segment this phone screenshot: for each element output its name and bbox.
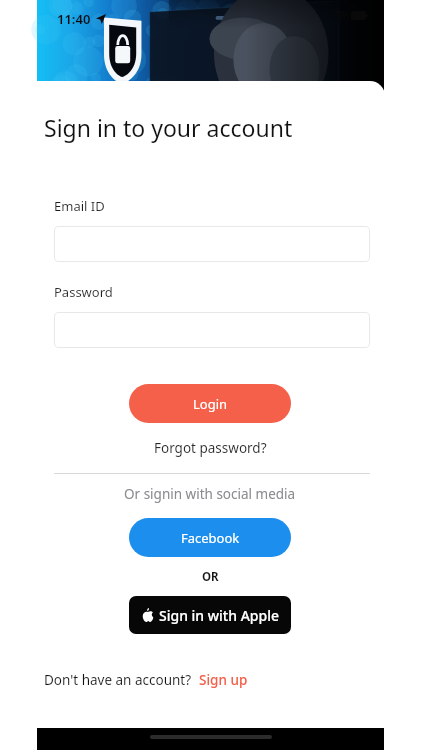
button[interactable]: Login	[129, 384, 291, 423]
staticText: 11:40	[57, 10, 91, 28]
staticText: Email ID	[54, 197, 105, 215]
staticText: Sign in with Apple	[159, 606, 279, 625]
staticText: Or signin with social media	[124, 485, 296, 503]
button[interactable]: Sign in with Apple	[129, 596, 291, 634]
button[interactable]	[54, 312, 370, 348]
staticText: Password	[54, 283, 113, 301]
staticText: Forgot password?	[154, 439, 267, 457]
button[interactable]: Facebook	[129, 518, 291, 557]
staticText: Sign up	[199, 671, 248, 689]
button[interactable]: Forgot password?	[148, 436, 273, 460]
staticText: Sign in to your account	[44, 112, 293, 143]
button[interactable]: Sign up	[199, 671, 248, 689]
staticText: Login	[193, 395, 228, 413]
staticText: Don't have an account?	[44, 671, 192, 689]
staticText: Facebook	[181, 529, 240, 547]
button[interactable]	[54, 226, 370, 262]
staticText: OR	[202, 569, 219, 585]
other: Location	[96, 14, 106, 24]
